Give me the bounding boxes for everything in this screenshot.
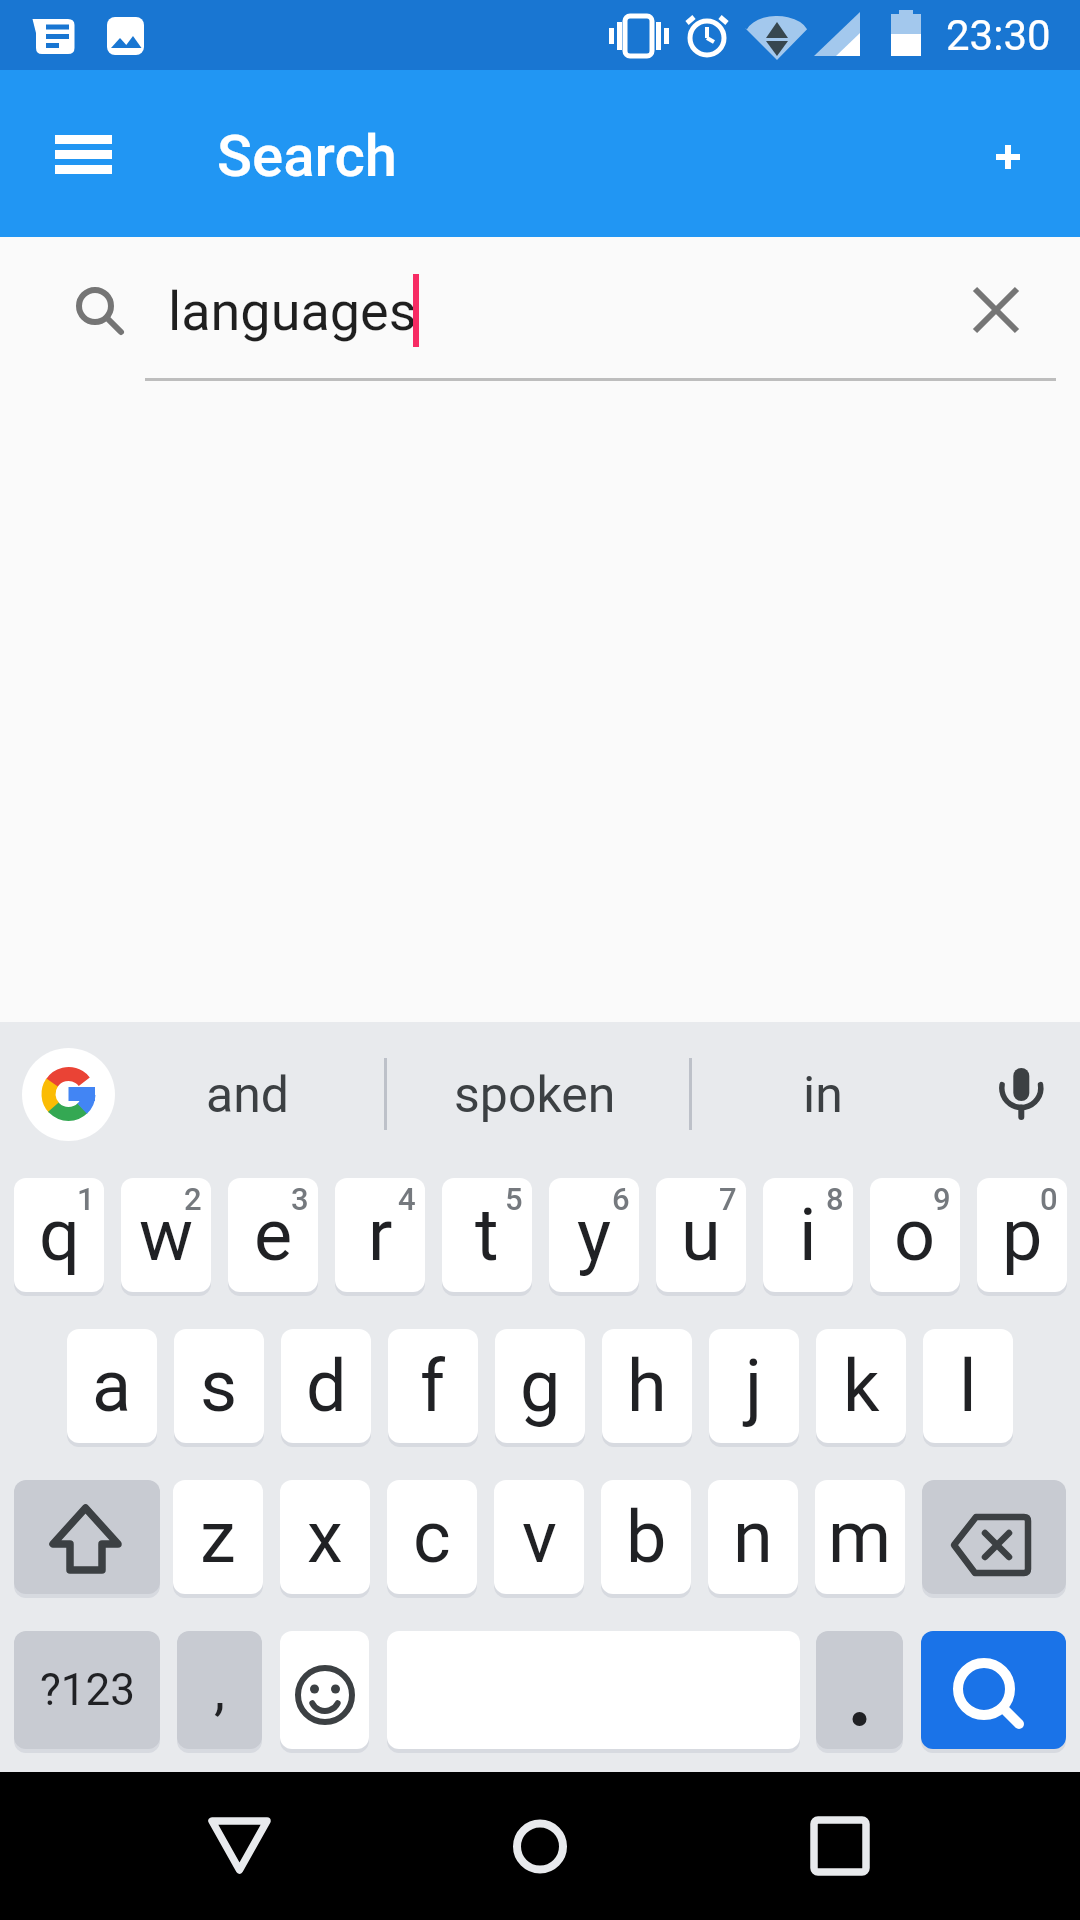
button[interactable]: r [335, 1178, 425, 1292]
button[interactable] [780, 1817, 900, 1877]
button[interactable] [14, 1480, 160, 1594]
button[interactable] [978, 127, 1038, 187]
button[interactable]: x [280, 1480, 370, 1594]
button[interactable] [43, 121, 127, 185]
button[interactable]: ?123 [14, 1631, 160, 1749]
staticText: 4 [398, 1181, 416, 1217]
button[interactable]: l [923, 1329, 1013, 1443]
staticText: z [200, 1495, 236, 1579]
button[interactable]: d [281, 1329, 371, 1443]
button[interactable]: , [177, 1631, 262, 1749]
button[interactable]: c [387, 1480, 477, 1594]
staticText: p [1002, 1193, 1043, 1277]
button[interactable]: v [494, 1480, 584, 1594]
staticText: r [368, 1193, 393, 1277]
button[interactable]: a [67, 1329, 157, 1443]
staticText: 2 [184, 1181, 202, 1217]
button[interactable]: q [14, 1178, 104, 1292]
staticText: 7 [719, 1181, 737, 1217]
staticText: w [139, 1193, 194, 1277]
staticText: x [307, 1495, 343, 1579]
staticText: 23:30 [946, 11, 1051, 60]
staticText: 1 [77, 1181, 95, 1217]
button[interactable]: n [708, 1480, 798, 1594]
button[interactable] [921, 1631, 1066, 1749]
staticText: n [733, 1495, 773, 1579]
button[interactable]: u [656, 1178, 746, 1292]
button[interactable]: e [228, 1178, 318, 1292]
button[interactable]: in [710, 1060, 935, 1130]
button[interactable]: m [815, 1480, 905, 1594]
button[interactable] [968, 282, 1024, 338]
staticText: y [577, 1193, 612, 1277]
staticText: 3 [291, 1181, 309, 1217]
button[interactable]: and [135, 1060, 360, 1130]
button[interactable]: i [763, 1178, 853, 1292]
button[interactable]: b [601, 1480, 691, 1594]
staticText: in [803, 1066, 843, 1125]
staticText: i [799, 1193, 817, 1277]
staticText: h [627, 1344, 667, 1428]
staticText: g [520, 1344, 561, 1428]
staticText: 9 [933, 1181, 951, 1217]
button[interactable]: o [870, 1178, 960, 1292]
staticText: o [894, 1193, 936, 1277]
button[interactable] [480, 1817, 600, 1877]
button[interactable]: f [388, 1329, 478, 1443]
staticText: 0 [1040, 1181, 1058, 1217]
staticText: 5 [505, 1181, 523, 1217]
staticText: a [92, 1344, 132, 1428]
staticText: k [843, 1344, 880, 1428]
button[interactable]: s [174, 1329, 264, 1443]
staticText: q [39, 1193, 80, 1277]
staticText: , [214, 1657, 226, 1723]
staticText: l [959, 1344, 977, 1428]
button[interactable] [816, 1631, 903, 1749]
button[interactable]: k [816, 1329, 906, 1443]
staticText: s [200, 1344, 238, 1428]
staticText: 8 [826, 1181, 844, 1217]
staticText: c [413, 1495, 451, 1579]
staticText: e [254, 1193, 293, 1277]
button[interactable] [922, 1480, 1066, 1594]
staticText: f [420, 1344, 446, 1428]
button[interactable]: w [121, 1178, 211, 1292]
staticText: 6 [612, 1181, 630, 1217]
button[interactable]: h [602, 1329, 692, 1443]
staticText: j [745, 1344, 763, 1428]
staticText: b [626, 1495, 667, 1579]
staticText: languages [168, 280, 417, 343]
staticText: t [475, 1193, 499, 1277]
button[interactable]: p [977, 1178, 1067, 1292]
button[interactable] [22, 1048, 115, 1141]
button[interactable]: g [495, 1329, 585, 1443]
button[interactable]: spoken [400, 1060, 670, 1130]
button[interactable]: t [442, 1178, 532, 1292]
staticText: and [206, 1066, 290, 1125]
button[interactable] [994, 1050, 1050, 1126]
staticText: spoken [454, 1066, 616, 1125]
button[interactable]: y [549, 1178, 639, 1292]
staticText: v [522, 1495, 557, 1579]
staticText: d [306, 1344, 347, 1428]
staticText: Search [217, 122, 398, 190]
button[interactable] [180, 1817, 300, 1877]
button[interactable]: j [709, 1329, 799, 1443]
staticText: m [828, 1495, 892, 1579]
staticText: u [681, 1193, 721, 1277]
staticText: ?123 [40, 1664, 135, 1716]
button[interactable]: z [173, 1480, 263, 1594]
button[interactable] [280, 1631, 369, 1749]
